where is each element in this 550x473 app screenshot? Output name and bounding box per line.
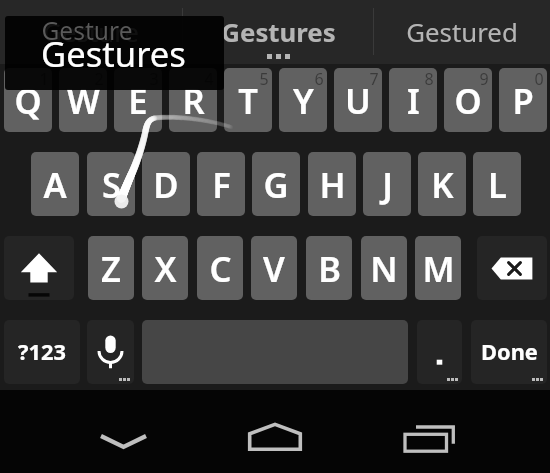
button[interactable]: Back — [80, 415, 168, 460]
button[interactable]: Gestured — [374, 0, 550, 64]
button[interactable]: Z — [88, 236, 134, 300]
staticText: D — [153, 161, 179, 208]
button[interactable]: V — [251, 236, 297, 300]
staticText: 0 — [534, 68, 544, 90]
button[interactable]: Home — [231, 415, 319, 460]
staticText: P — [512, 77, 534, 124]
staticText: Done — [481, 337, 538, 367]
staticText: K — [431, 161, 454, 208]
button[interactable]: U — [334, 68, 382, 132]
staticText: Z — [101, 245, 121, 292]
staticText: O — [454, 77, 482, 124]
staticText: B — [318, 245, 341, 292]
staticText: G — [263, 161, 289, 208]
staticText: 9 — [479, 68, 489, 90]
staticText: F — [212, 161, 231, 208]
button[interactable]: A — [31, 152, 79, 216]
staticText: Gesture — [41, 16, 133, 48]
button[interactable]: B — [306, 236, 352, 300]
button[interactable]: E — [114, 68, 162, 132]
button[interactable]: O — [444, 68, 492, 132]
button[interactable]: Voice input — [87, 320, 134, 384]
button[interactable]: ?123 — [4, 320, 80, 384]
staticText: Gesture — [43, 14, 139, 49]
button[interactable]: S — [87, 152, 135, 216]
staticText: R — [182, 77, 205, 124]
staticText: 6 — [314, 68, 324, 90]
button[interactable]: P — [499, 68, 547, 132]
button[interactable]: J — [363, 152, 411, 216]
button[interactable]: Done — [471, 320, 547, 384]
button[interactable]: K — [418, 152, 466, 216]
button[interactable]: H — [308, 152, 356, 216]
staticText: U — [345, 77, 371, 124]
staticText: T — [238, 77, 258, 124]
staticText: X — [154, 245, 177, 292]
staticText: ?123 — [18, 337, 66, 367]
staticText: Gestures — [221, 14, 336, 49]
staticText: Y — [293, 77, 314, 124]
staticText: L — [488, 161, 507, 208]
button[interactable]: C — [197, 236, 243, 300]
staticText: S — [102, 161, 121, 208]
button[interactable]: W — [59, 68, 107, 132]
button[interactable]: Recents — [385, 415, 473, 460]
button[interactable]: R — [169, 68, 217, 132]
staticText: Q — [14, 77, 42, 124]
button[interactable]: Gestures — [183, 0, 373, 64]
staticText: J — [382, 161, 393, 208]
button[interactable]: F — [197, 152, 245, 216]
button[interactable]: Gesture — [5, 16, 224, 90]
button[interactable]: Period — [417, 320, 462, 384]
staticText: A — [43, 161, 67, 208]
staticText: W — [67, 77, 100, 124]
staticText: I — [407, 77, 420, 124]
button[interactable]: M — [415, 236, 461, 300]
staticText: V — [263, 245, 285, 292]
button[interactable]: Backspace — [477, 236, 547, 300]
staticText: 7 — [369, 68, 379, 90]
button[interactable]: Gesture — [0, 0, 182, 64]
button[interactable]: G — [252, 152, 300, 216]
button[interactable]: I — [389, 68, 437, 132]
button[interactable]: L — [473, 152, 521, 216]
staticText: H — [319, 161, 346, 208]
staticText: N — [370, 245, 398, 292]
button[interactable]: T — [224, 68, 272, 132]
button[interactable]: Q — [4, 68, 52, 132]
staticText: 8 — [424, 68, 434, 90]
button[interactable]: N — [361, 236, 407, 300]
button[interactable]: Y — [279, 68, 327, 132]
button[interactable]: D — [142, 152, 190, 216]
staticText: C — [209, 245, 232, 292]
button[interactable]: Shift — [4, 236, 74, 300]
staticText: E — [128, 77, 148, 124]
staticText: Gestured — [406, 14, 518, 49]
staticText: 5 — [259, 68, 269, 90]
staticText: Gestures — [41, 30, 186, 77]
staticText: M — [422, 245, 455, 292]
button[interactable]: X — [142, 236, 188, 300]
